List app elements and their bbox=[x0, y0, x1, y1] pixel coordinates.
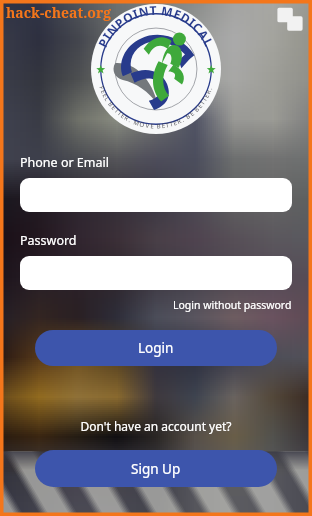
staticText: Sign Up bbox=[131, 460, 181, 478]
staticText: Password bbox=[20, 232, 77, 249]
staticText: Login without password bbox=[173, 298, 292, 312]
staticText: Login bbox=[138, 339, 174, 357]
staticText: hack-cheat.org bbox=[6, 3, 112, 22]
button[interactable]: Login bbox=[35, 330, 277, 366]
staticText: Phone or Email bbox=[20, 154, 109, 171]
button[interactable] bbox=[20, 178, 292, 212]
staticText: Don't have an account yet? bbox=[0, 418, 312, 434]
button[interactable] bbox=[20, 256, 292, 290]
button[interactable]: Translate bbox=[276, 5, 304, 33]
button[interactable]: Login without password bbox=[173, 298, 292, 312]
button[interactable]: Sign Up bbox=[35, 450, 277, 487]
